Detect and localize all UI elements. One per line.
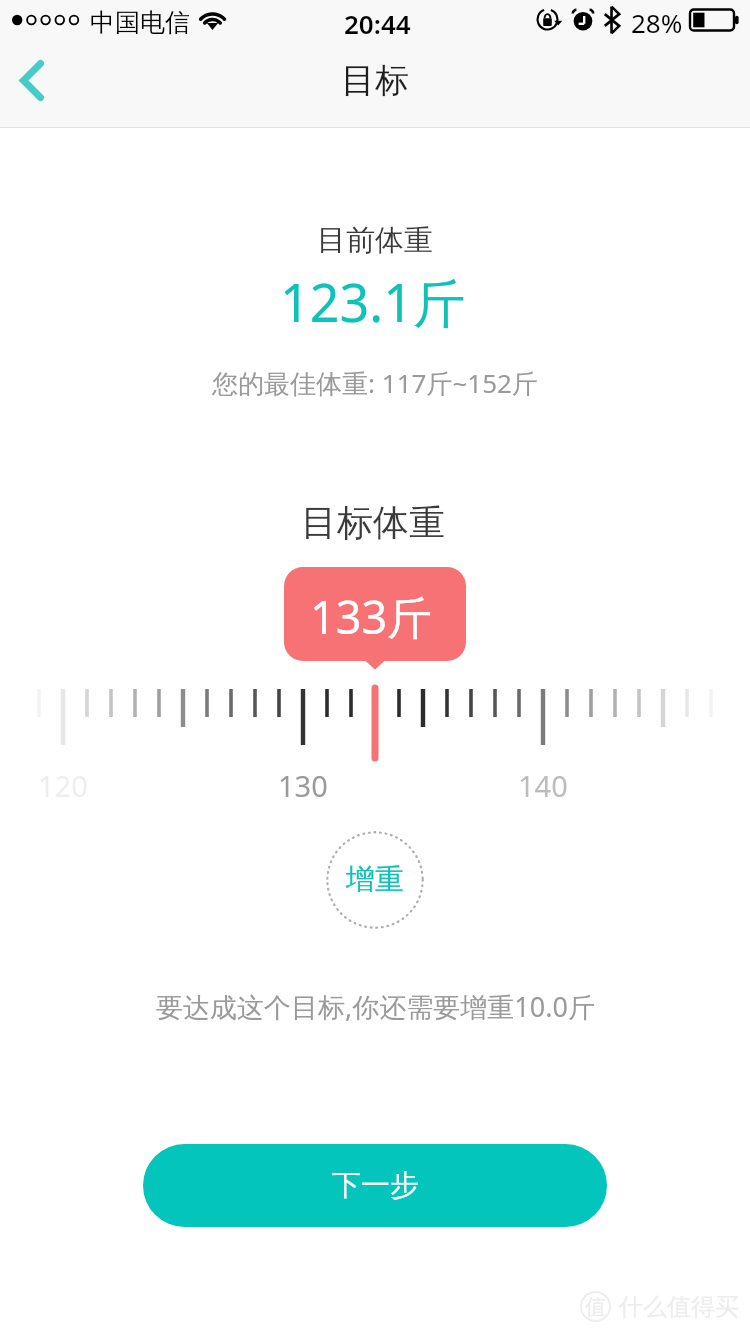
staticText: 您的最佳体重: 117斤~152斤 [212, 365, 538, 401]
button[interactable]: 增重 [326, 831, 424, 929]
staticText: 123.1斤 [280, 266, 465, 337]
staticText: 增重 [346, 861, 404, 898]
button[interactable]: 下一步 [143, 1144, 607, 1227]
staticText: 20:44 [344, 6, 411, 41]
staticText: 下一步 [332, 1167, 419, 1204]
button[interactable]: 120 [0, 680, 750, 800]
staticText: 140 [518, 766, 568, 805]
staticText: 目前体重 [317, 222, 433, 259]
staticText: 130 [278, 766, 328, 805]
staticText: 什么值得买 [619, 1292, 739, 1322]
staticText: 28% [631, 5, 683, 40]
staticText: 133斤 [310, 586, 433, 647]
staticText: 120 [38, 766, 88, 805]
staticText: 要达成这个目标,你还需要增重10.0斤 [156, 988, 595, 1025]
staticText: 值 [585, 1294, 606, 1320]
staticText: 目标 [341, 59, 409, 102]
staticText: 中国电信 [90, 7, 190, 38]
staticText: 目标体重 [301, 500, 445, 545]
button[interactable]: Back [0, 40, 70, 124]
